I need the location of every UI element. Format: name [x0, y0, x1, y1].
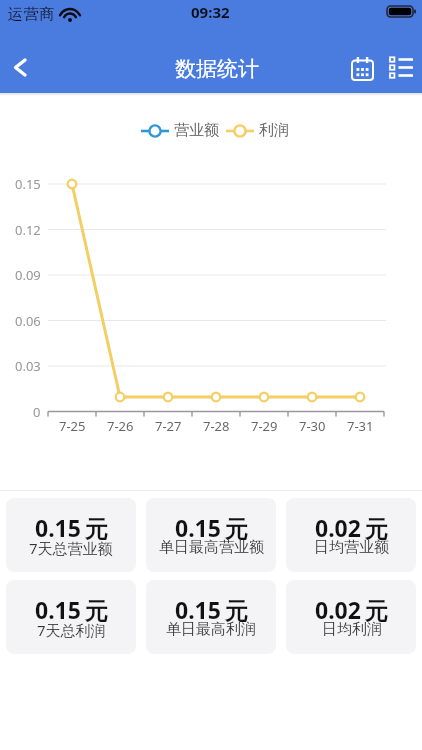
staticText: 单日最高利润	[166, 620, 256, 639]
staticText: 单日最高营业额	[159, 538, 264, 557]
staticText: 7-31	[347, 417, 374, 435]
staticText: 7天总营业额	[29, 538, 113, 558]
staticText: 7-25	[59, 417, 86, 435]
staticText: 日均利润	[322, 620, 382, 639]
staticText: 运营商	[7, 5, 55, 24]
button[interactable]: 0.15 元	[146, 580, 276, 654]
staticText: 7-26	[107, 417, 134, 435]
staticText: 0.15	[15, 175, 41, 193]
staticText: 7-30	[299, 417, 326, 435]
staticText: 0.15 元	[35, 512, 108, 543]
staticText: 7-27	[155, 417, 182, 435]
staticText: 0.15 元	[175, 594, 248, 625]
staticText: 利润	[259, 121, 289, 140]
button[interactable]	[346, 44, 378, 93]
staticText: 0.09	[15, 266, 41, 284]
staticText: 数据统计	[175, 56, 259, 82]
staticText: 0.02 元	[315, 512, 388, 543]
button[interactable]: 0.02 元	[286, 580, 416, 654]
staticText: 0	[33, 403, 41, 421]
staticText: 0.15 元	[35, 594, 108, 625]
staticText: 7天总利润	[37, 620, 106, 640]
staticText: 0.12	[15, 221, 41, 239]
button[interactable]: 0.15 元	[6, 498, 136, 572]
button[interactable]: 0.15 元	[6, 580, 136, 654]
staticText: 日均营业额	[314, 538, 389, 557]
staticText: 7-29	[251, 417, 278, 435]
staticText: 7-28	[203, 417, 230, 435]
button[interactable]: 0.15 元	[146, 498, 276, 572]
staticText: 营业额	[174, 121, 219, 140]
button[interactable]: 0.02 元	[286, 498, 416, 572]
staticText: 0.15 元	[175, 512, 248, 543]
staticText: 09:32	[191, 2, 230, 22]
staticText: 0.06	[15, 312, 41, 330]
button[interactable]	[384, 44, 418, 93]
staticText: 0.02 元	[315, 594, 388, 625]
button[interactable]	[2, 50, 36, 84]
staticText: 0.03	[15, 357, 41, 375]
